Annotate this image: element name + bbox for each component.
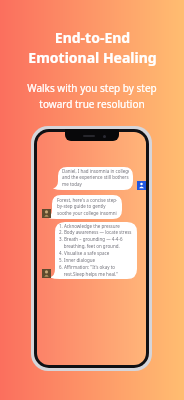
- staticText: Forest, here's a concise step- by-step g…: [57, 197, 117, 217]
- staticText: Walks with you step by step toward true …: [27, 81, 157, 110]
- button[interactable]: User avatar: [137, 181, 146, 190]
- button[interactable]: Assistant avatar: [42, 269, 51, 278]
- button[interactable]: Assistant avatar: [42, 209, 51, 218]
- staticText: 1. Acknowledge the pressure 2. Body awar…: [59, 223, 132, 278]
- button[interactable]: 1. Acknowledge the pressure 2. Body awar…: [50, 222, 137, 279]
- staticText: Daniel, I had insomnia in college and th…: [62, 168, 129, 188]
- staticText: End-to-End Emotional Healing: [28, 28, 157, 67]
- button[interactable]: Forest, here's a concise step- by-step g…: [47, 195, 122, 219]
- button[interactable]: Daniel, I had insomnia in college and th…: [53, 167, 133, 190]
